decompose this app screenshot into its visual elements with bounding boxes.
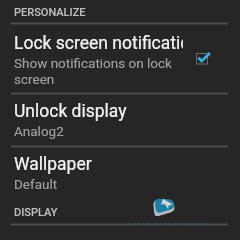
staticText: Unlock display	[14, 101, 127, 122]
staticText: Default	[14, 176, 58, 192]
button[interactable]: PERSONALIZE	[14, 6, 86, 19]
staticText: PERSONALIZE	[14, 6, 86, 19]
button[interactable]	[0, 24, 240, 93]
button[interactable]: DISPLAY	[14, 206, 58, 219]
button[interactable]	[0, 147, 240, 199]
staticText: Analog2	[14, 123, 64, 139]
staticText: DISPLAY	[14, 206, 58, 219]
button[interactable]	[0, 94, 240, 146]
other: Pointer	[151, 194, 179, 220]
button[interactable]: Lock screen notifications checkbox	[185, 36, 230, 81]
staticText: Show notifications on lock screen	[14, 55, 183, 87]
staticText: Wallpaper	[14, 154, 92, 175]
staticText: Lock screen notifications	[14, 33, 183, 54]
